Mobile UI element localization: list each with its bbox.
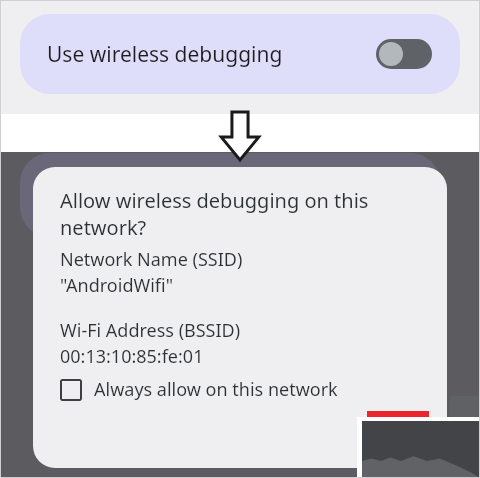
staticText: Allow wireless debugging on this network… bbox=[60, 187, 369, 241]
staticText: Wi-Fi Address (BSSID) 00:13:10:85:fe:01 bbox=[60, 318, 241, 368]
button[interactable]: Always allow on this network bbox=[60, 377, 338, 402]
button[interactable]: Cancel bbox=[350, 420, 435, 458]
button[interactable]: Use wireless debugging toggle bbox=[376, 39, 432, 69]
staticText: Always allow on this network bbox=[94, 377, 338, 402]
staticText: Network Name (SSID) "AndroidWifi" bbox=[60, 247, 243, 297]
button[interactable]: Use wireless debugging bbox=[20, 14, 460, 94]
staticText: Use wireless debugging bbox=[47, 40, 283, 69]
